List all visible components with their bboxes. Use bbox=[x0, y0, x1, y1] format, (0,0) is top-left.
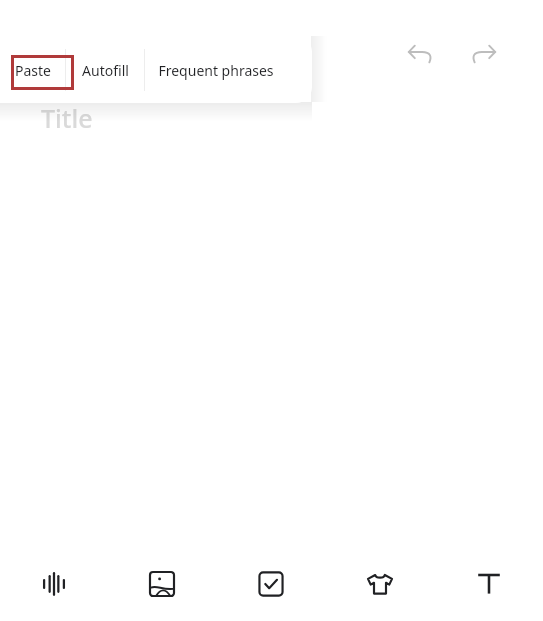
staticText: Paste bbox=[15, 61, 51, 80]
button[interactable]: Redo bbox=[460, 30, 508, 78]
button[interactable]: Add image bbox=[108, 547, 216, 621]
staticText: Autofill bbox=[82, 61, 129, 80]
button[interactable]: Text formatting bbox=[434, 547, 543, 621]
button[interactable]: Drawing bbox=[325, 547, 434, 621]
button[interactable]: Checklist bbox=[216, 547, 325, 621]
button[interactable]: Autofill bbox=[66, 52, 144, 88]
button[interactable]: Record audio bbox=[0, 547, 108, 621]
staticText: Title bbox=[41, 101, 93, 135]
button[interactable]: Undo bbox=[396, 30, 444, 78]
button[interactable]: Paste bbox=[0, 52, 65, 88]
button[interactable]: Frequent phrases bbox=[145, 52, 287, 88]
staticText: Frequent phrases bbox=[158, 61, 274, 80]
